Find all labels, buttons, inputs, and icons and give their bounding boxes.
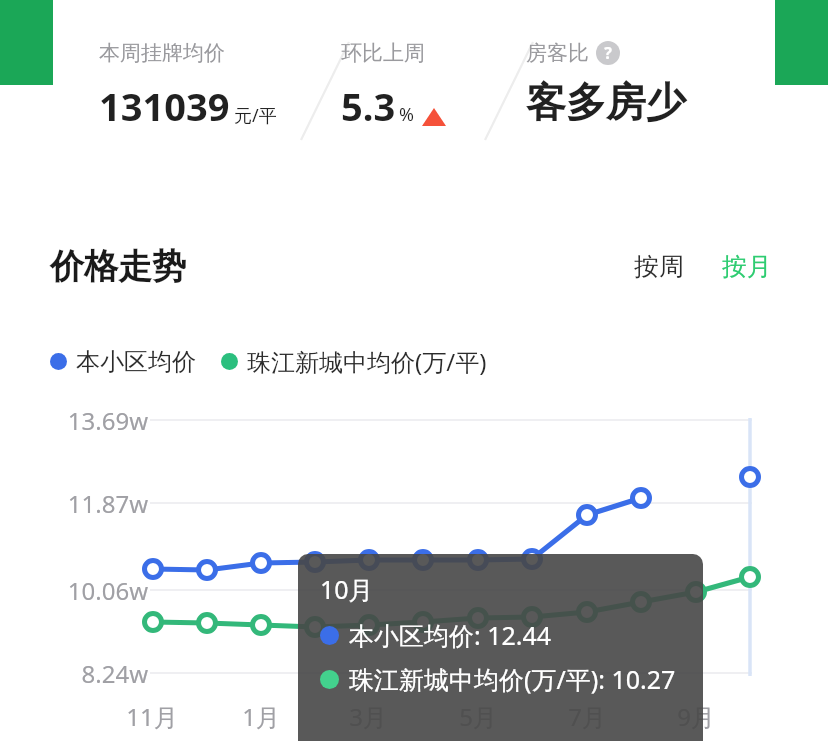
- staticText: 珠江新城中均价(万/平): [247, 345, 487, 378]
- staticText: %: [399, 102, 414, 127]
- staticText: 5.3: [341, 80, 396, 132]
- staticText: 按周: [634, 251, 684, 282]
- staticText: 元/平: [234, 103, 277, 128]
- staticText: 11月: [107, 700, 197, 733]
- button[interactable]: 按月: [716, 245, 778, 288]
- staticText: 11.87w: [48, 487, 148, 520]
- staticText: ?: [604, 42, 612, 64]
- staticText: 客多房少: [526, 77, 686, 127]
- staticText: 13.69w: [48, 404, 148, 437]
- staticText: 10月: [320, 572, 374, 606]
- staticText: 131039: [99, 80, 230, 132]
- staticText: 8.24w: [48, 657, 148, 690]
- staticText: 环比上周: [341, 40, 425, 66]
- button[interactable]: 本周挂牌均价: [53, 0, 775, 190]
- staticText: 本周挂牌均价: [99, 40, 225, 66]
- staticText: 房客比: [526, 40, 589, 66]
- button[interactable]: 按周: [628, 245, 690, 288]
- staticText: 10.06w: [48, 574, 148, 607]
- staticText: 本小区均价: [76, 347, 196, 377]
- staticText: 9月: [651, 700, 741, 733]
- staticText: 价格走势: [50, 245, 186, 288]
- staticText: 本小区均价: 12.44: [349, 618, 552, 652]
- staticText: 按月: [722, 251, 772, 282]
- staticText: 珠江新城中均价(万/平): 10.27: [349, 662, 676, 696]
- button[interactable]: 房客比说明: [596, 41, 620, 65]
- staticText: 1月: [216, 700, 306, 733]
